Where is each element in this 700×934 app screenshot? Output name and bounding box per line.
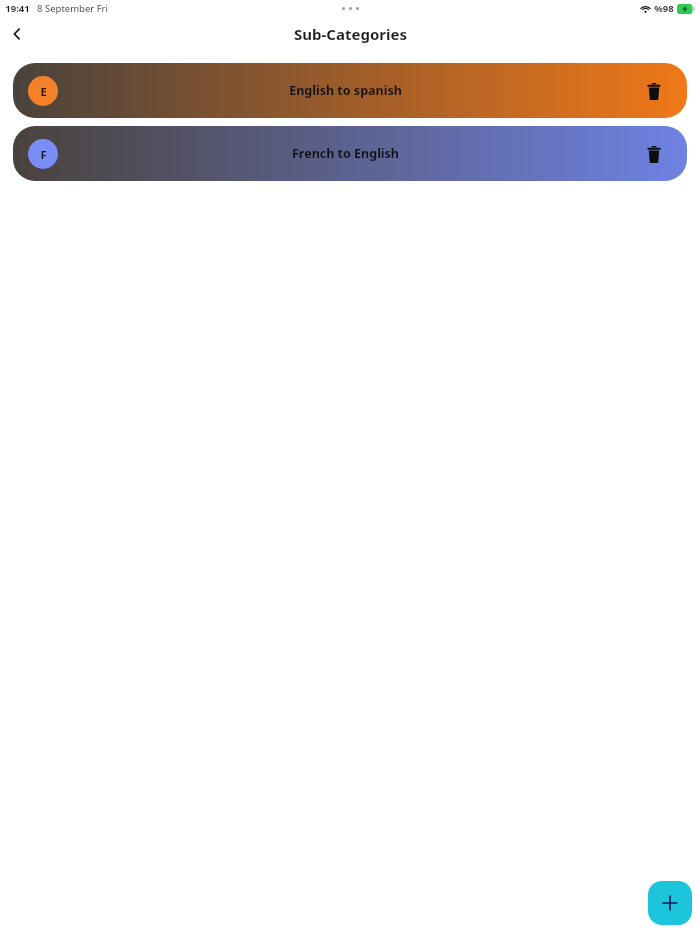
button[interactable]: F xyxy=(13,126,687,181)
staticText: Sub-Categories xyxy=(294,24,407,44)
staticText: 8 September Fri xyxy=(37,2,108,15)
button[interactable]: E xyxy=(13,63,687,118)
staticText: E xyxy=(40,84,47,99)
staticText: %98 xyxy=(654,2,674,15)
button[interactable]: Delete English to spanish xyxy=(639,76,669,106)
button[interactable]: Back xyxy=(0,17,34,51)
staticText: French to English xyxy=(292,145,399,162)
staticText: 19:41 xyxy=(5,2,30,15)
staticText: English to spanish xyxy=(289,82,402,99)
button[interactable]: Add sub-category xyxy=(648,881,692,925)
staticText: F xyxy=(40,147,47,162)
button[interactable]: Delete French to English xyxy=(639,139,669,169)
